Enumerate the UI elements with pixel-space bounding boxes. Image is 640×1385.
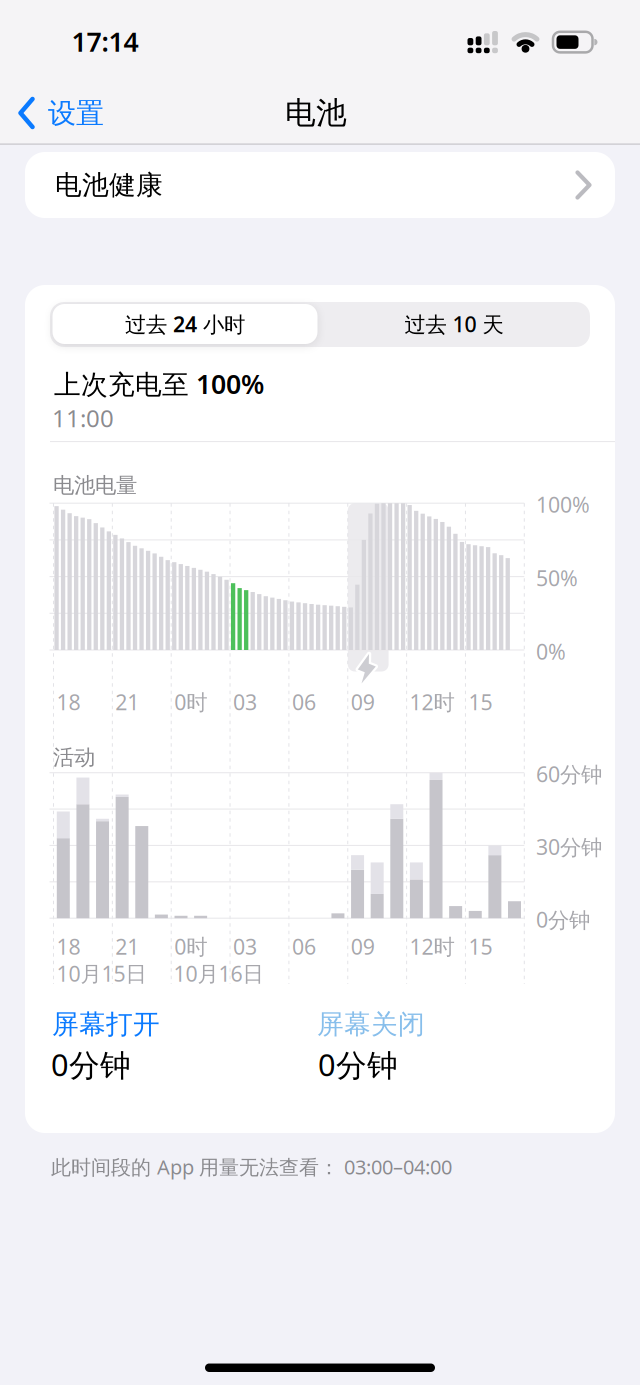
staticText: 0% <box>536 637 566 665</box>
staticText: 0分钟 <box>318 1044 398 1085</box>
staticText: 电池健康 <box>55 169 163 201</box>
staticText: 屏幕关闭 <box>317 1008 425 1041</box>
staticText: 设置 <box>48 96 104 131</box>
staticText: 0时 <box>174 688 207 716</box>
staticText: 12时 <box>410 932 455 960</box>
staticText: 11:00 <box>52 402 114 434</box>
staticText: 15 <box>468 932 492 960</box>
staticText: 17:14 <box>71 24 138 59</box>
staticText: 09 <box>351 932 375 960</box>
staticText: 100% <box>536 490 590 519</box>
staticText: 03 <box>233 688 257 716</box>
staticText: 30分钟 <box>536 833 602 861</box>
staticText: 电池 <box>285 94 347 132</box>
staticText: 21 <box>115 932 139 960</box>
staticText: 10月16日 <box>173 959 263 987</box>
staticText: 06 <box>292 932 316 960</box>
button[interactable]: 电池健康 <box>25 152 615 218</box>
staticText: 活动 <box>53 744 95 770</box>
staticText: 0分钟 <box>51 1044 131 1085</box>
button[interactable]: 返回设置 <box>20 88 144 138</box>
button[interactable]: 过去 24 小时 <box>52 304 317 344</box>
staticText: 0分钟 <box>536 905 590 934</box>
staticText: 15 <box>468 688 492 716</box>
staticText: 10月15日 <box>56 959 146 987</box>
staticText: 上次充电至 100% <box>54 366 264 401</box>
staticText: 60分钟 <box>536 760 602 788</box>
staticText: 电池电量 <box>53 472 137 498</box>
staticText: 过去 10 天 <box>404 310 503 338</box>
staticText: 21 <box>115 688 139 716</box>
staticText: 过去 24 小时 <box>125 310 245 338</box>
staticText: 屏幕打开 <box>52 1008 160 1041</box>
staticText: 50% <box>536 564 578 592</box>
staticText: 0时 <box>174 932 207 960</box>
staticText: 此时间段的 App 用量无法查看： 03:00–04:00 <box>51 1153 452 1180</box>
staticText: 03 <box>233 932 257 960</box>
staticText: 09 <box>351 688 375 716</box>
staticText: 18 <box>56 932 80 960</box>
button[interactable]: 过去 10 天 <box>320 304 588 344</box>
staticText: 06 <box>292 688 316 716</box>
staticText: 18 <box>56 688 80 716</box>
staticText: 12时 <box>410 688 455 716</box>
